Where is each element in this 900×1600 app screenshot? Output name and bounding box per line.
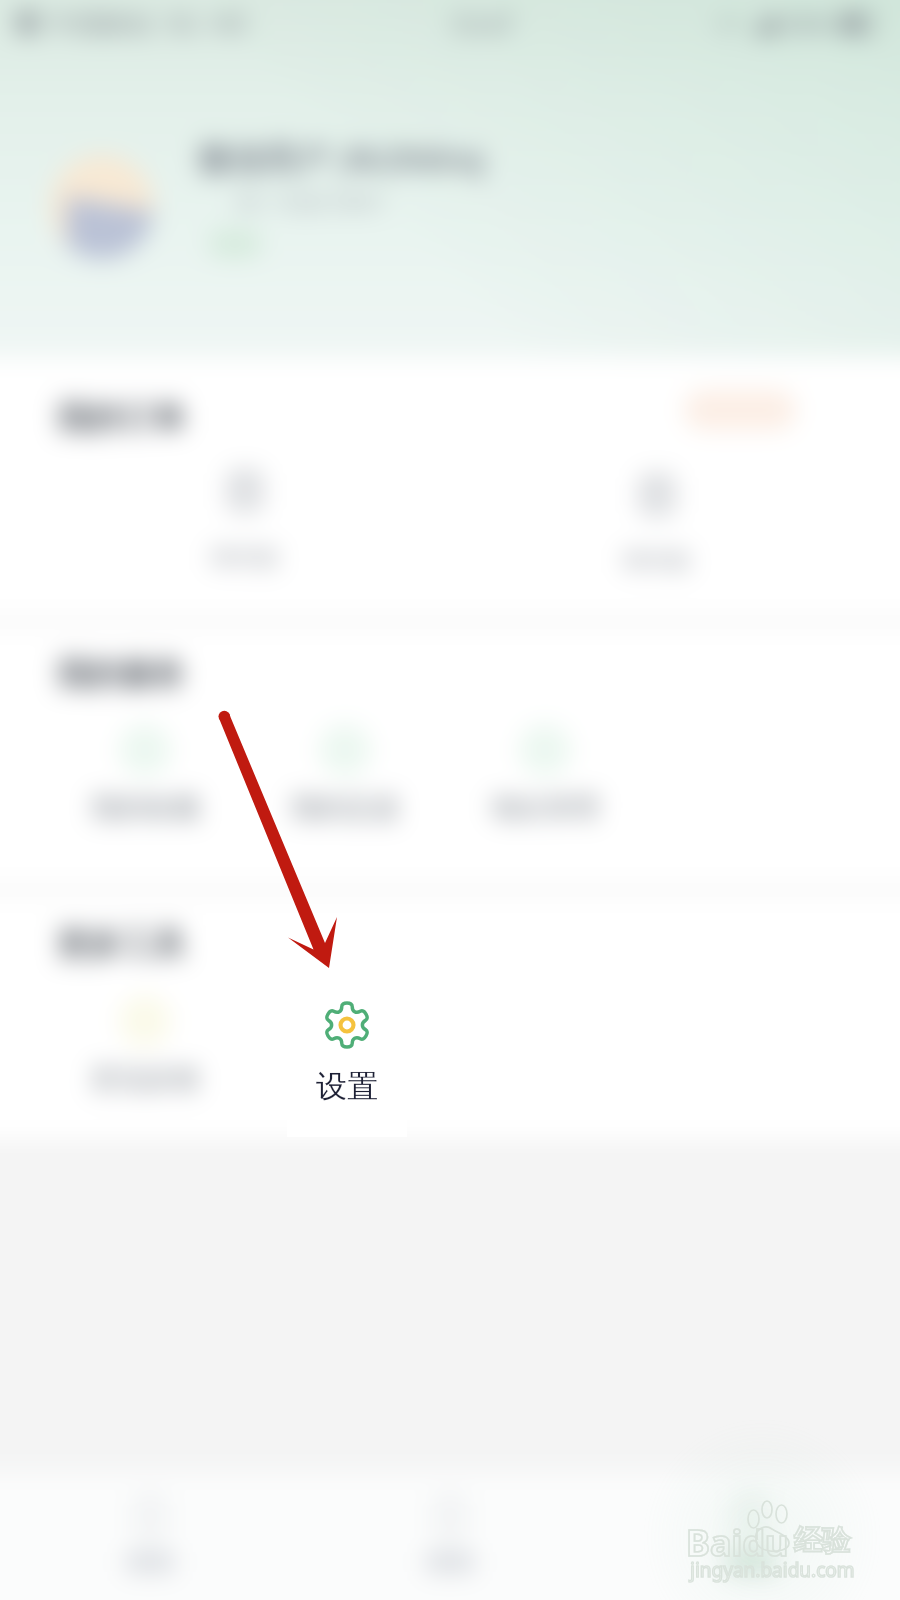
staticText: 意见反馈 <box>50 1062 240 1096</box>
staticText: 86% <box>786 7 834 40</box>
staticText: 中国移动 5G HD <box>52 6 248 40</box>
button[interactable]: 待付款 <box>155 447 335 579</box>
button[interactable]: 待付款 <box>567 451 747 583</box>
button[interactable]: 设置 <box>250 973 440 1113</box>
button[interactable]: 我的足迹 <box>250 702 440 842</box>
staticText: Baidu <box>686 1518 789 1567</box>
button[interactable]: 意见反馈 <box>50 973 240 1113</box>
button[interactable]: 查看全部订单 <box>672 384 808 436</box>
staticText: 设置 <box>287 1067 407 1106</box>
staticText: 待付款 <box>567 546 747 575</box>
staticText: 微信用户_8k29dnq <box>198 136 484 181</box>
button[interactable]: 我的 <box>600 1472 900 1600</box>
staticText: 我的订单 <box>57 398 185 438</box>
staticText: 待付款 <box>155 543 335 572</box>
staticText: 我的服务 <box>57 654 185 694</box>
staticText: 我的收藏 <box>50 791 240 825</box>
staticText: 更多工具 <box>57 924 185 964</box>
button[interactable]: 我的收藏 <box>50 702 240 842</box>
staticText: jingyan.baidu.com <box>690 1557 855 1583</box>
button[interactable]: 分类 <box>300 1472 600 1600</box>
staticText: 设置 <box>250 1062 440 1096</box>
staticText: 地址管理 <box>450 791 640 825</box>
button[interactable]: 设置 <box>287 953 407 1137</box>
button[interactable]: 地址管理 <box>450 702 640 842</box>
staticText: 经验 <box>794 1523 850 1558</box>
button[interactable]: 个人资料 <box>30 130 590 280</box>
staticText: 我的足迹 <box>250 791 440 825</box>
button[interactable]: 首页 <box>0 1472 300 1600</box>
